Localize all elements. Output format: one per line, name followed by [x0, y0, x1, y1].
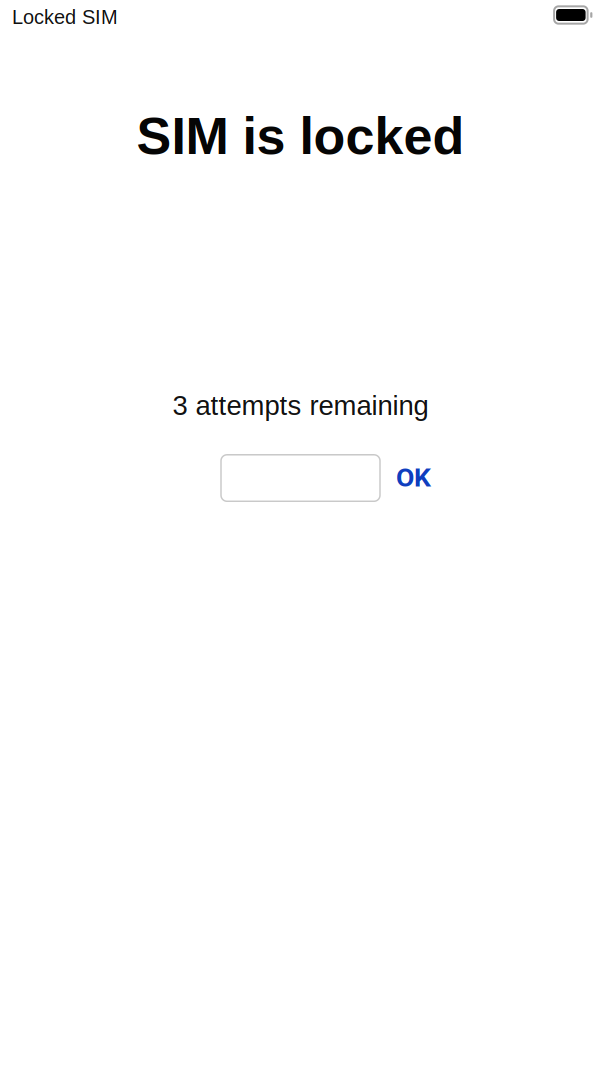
staticText: OK — [396, 462, 431, 493]
button[interactable]: OK — [396, 462, 431, 493]
staticText: 3 attempts remaining — [172, 390, 428, 421]
staticText: Locked SIM — [12, 6, 118, 28]
staticText: SIM is locked — [136, 107, 464, 165]
button[interactable]: SIM PIN — [221, 455, 380, 501]
